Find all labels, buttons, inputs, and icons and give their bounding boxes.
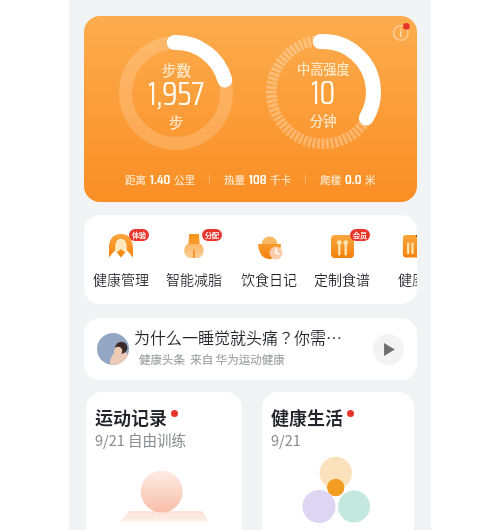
button[interactable]: 健康: [377, 225, 417, 295]
staticText: 中高强度: [297, 59, 350, 78]
staticText: 千卡: [270, 172, 291, 187]
staticText: 体验: [132, 230, 146, 240]
staticText: 定制食谱: [314, 269, 370, 289]
staticText: 公里: [174, 172, 195, 187]
button[interactable]: 运动记录: [86, 392, 242, 530]
button[interactable]: 饮食日记: [234, 225, 304, 295]
staticText: 分钟: [310, 111, 337, 130]
button[interactable]: 步数: [84, 16, 417, 202]
button[interactable]: 健康生活: [262, 392, 414, 530]
staticText: 会员: [353, 230, 367, 240]
staticText: 1,957: [148, 69, 205, 119]
staticText: 健康管理: [93, 269, 149, 289]
staticText: 10: [311, 68, 336, 118]
staticText: 米: [365, 172, 376, 187]
button[interactable]: 体验: [86, 225, 156, 295]
staticText: 健康头条 来自 华为运动健康: [139, 351, 285, 368]
staticText: 9/21: [271, 429, 301, 450]
staticText: 108: [249, 168, 267, 190]
staticText: 健康生活: [271, 404, 343, 430]
staticText: 9/21 自由训练: [95, 429, 187, 450]
staticText: 步: [169, 111, 184, 132]
staticText: 健康: [398, 269, 417, 289]
staticText: 热量: [224, 172, 245, 187]
button[interactable]: 为什么一睡觉就头痛？你需…: [84, 318, 417, 380]
button[interactable]: Info: [386, 19, 414, 47]
staticText: 0.0: [345, 168, 362, 190]
staticText: 智能减脂: [166, 269, 222, 289]
button[interactable]: 会员: [307, 225, 377, 295]
button[interactable]: 分配: [159, 225, 229, 295]
staticText: 步数: [162, 59, 191, 80]
staticText: 爬楼: [320, 172, 341, 187]
staticText: 距离: [125, 172, 146, 187]
staticText: 饮食日记: [241, 269, 297, 289]
staticText: 1.40: [150, 168, 171, 190]
staticText: 运动记录: [95, 404, 167, 430]
button[interactable]: Play: [373, 334, 404, 365]
staticText: 为什么一睡觉就头痛？你需…: [134, 325, 343, 348]
staticText: 分配: [205, 230, 219, 240]
